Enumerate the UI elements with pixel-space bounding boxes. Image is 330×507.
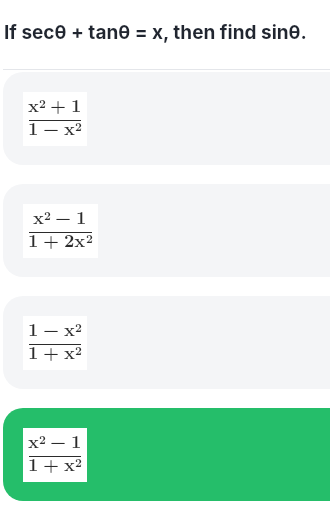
staticText: 1 (28, 339, 39, 365)
staticText: 2 (75, 318, 82, 335)
staticText: x (64, 339, 75, 365)
staticText: − (43, 316, 60, 342)
staticText: 2 (39, 430, 46, 447)
staticText: − (43, 115, 60, 141)
staticText: 2 (75, 117, 82, 134)
staticText: 2 (75, 453, 82, 470)
staticText: − (55, 204, 72, 230)
staticText: − (50, 428, 67, 454)
staticText: 2x (64, 227, 86, 253)
staticText: 2 (39, 94, 46, 111)
staticText: x (64, 451, 75, 477)
staticText: x (33, 204, 44, 230)
staticText: + (50, 92, 67, 118)
staticText: 1 (71, 92, 82, 118)
staticText: 1 (71, 428, 82, 454)
staticText: x (64, 316, 75, 342)
button[interactable]: 1 minus x squared over 1 plus x squared (3, 296, 330, 389)
staticText: 2 (86, 229, 93, 246)
staticText: x (28, 92, 39, 118)
staticText: x (64, 115, 75, 141)
staticText: 2 (75, 341, 82, 358)
staticText: 1 (76, 204, 87, 230)
staticText: 1 (28, 227, 39, 253)
button[interactable]: x squared minus 1 over 1 plus 2 x square… (3, 184, 330, 277)
staticText: 1 (28, 115, 39, 141)
staticText: If secθ + tanθ = x, then find sinθ. (4, 21, 307, 44)
staticText: + (43, 339, 60, 365)
button[interactable]: x squared minus 1 over 1 plus x squared (3, 408, 330, 501)
staticText: + (43, 451, 60, 477)
staticText: 1 (28, 316, 39, 342)
staticText: 2 (44, 206, 51, 223)
staticText: x (28, 428, 39, 454)
staticText: + (43, 227, 60, 253)
button[interactable]: x squared plus 1 over 1 minus x squared (3, 72, 330, 165)
staticText: 1 (28, 451, 39, 477)
